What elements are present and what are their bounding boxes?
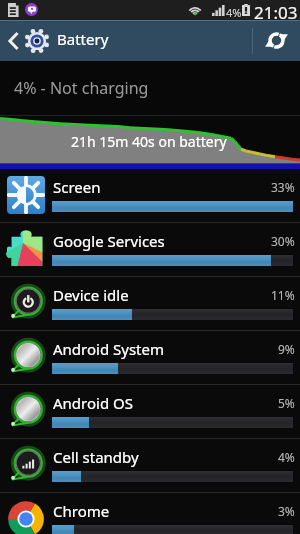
button[interactable]: Device idle [0, 277, 300, 331]
button[interactable]: Screen [0, 169, 300, 223]
staticText: 5% [278, 395, 295, 411]
staticText: 21:03 [254, 1, 298, 21]
staticText: Screen [53, 177, 101, 197]
staticText: 11% [271, 287, 295, 303]
staticText: 30% [271, 233, 295, 249]
button[interactable]: Battery [0, 20, 252, 61]
button[interactable]: Chrome [0, 493, 300, 534]
staticText: 9% [278, 341, 295, 357]
button[interactable]: Google Services [0, 223, 300, 277]
button[interactable]: Cell standby [0, 439, 300, 493]
staticText: Device idle [53, 285, 129, 305]
staticText: Battery [57, 29, 109, 49]
staticText: 21h 15m 40s on battery [71, 132, 227, 151]
staticText: 4% - Not charging [14, 77, 149, 99]
staticText: Android System [53, 339, 165, 359]
staticText: 4% [278, 449, 295, 465]
button[interactable]: Android OS [0, 385, 300, 439]
button[interactable]: Refresh [253, 20, 300, 61]
staticText: Chrome [53, 501, 110, 521]
staticText: Cell standby [53, 447, 139, 467]
staticText: 3% [278, 503, 295, 519]
button[interactable]: Android System [0, 331, 300, 385]
staticText: 4% [226, 5, 242, 20]
staticText: Google Services [53, 231, 165, 251]
staticText: Android OS [53, 393, 133, 413]
staticText: 33% [271, 179, 295, 195]
